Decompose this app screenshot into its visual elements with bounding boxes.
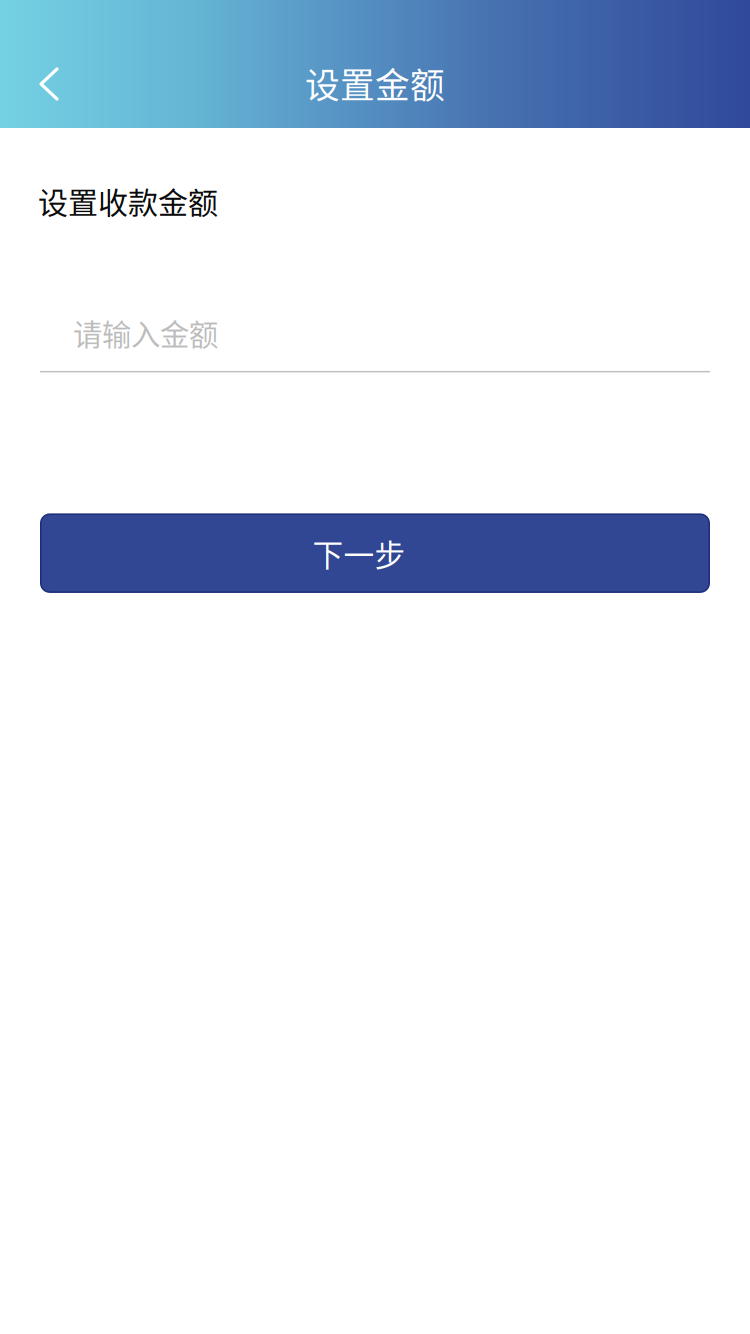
button[interactable]: 返回 — [7, 40, 91, 128]
staticText: 请输入金额 — [73, 311, 218, 354]
staticText: 设置金额 — [305, 58, 445, 108]
staticText: 下一步 — [312, 531, 405, 575]
button[interactable]: 下一步 — [40, 513, 710, 593]
staticText: 设置收款金额 — [38, 179, 218, 222]
